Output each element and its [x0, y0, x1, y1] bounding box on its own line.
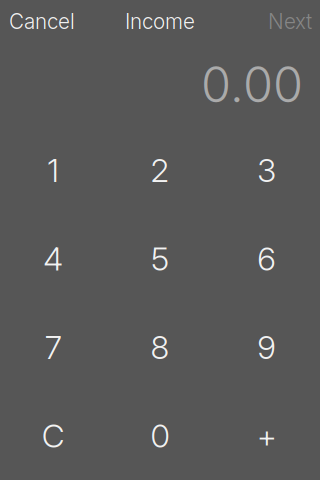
button[interactable]: 3 [213, 126, 320, 214]
staticText: + [257, 416, 277, 455]
button[interactable]: Next [259, 0, 320, 42]
button[interactable]: 5 [107, 214, 213, 303]
staticText: 9 [257, 328, 276, 367]
staticText: 8 [150, 328, 169, 367]
staticText: Income [125, 9, 195, 34]
button[interactable]: 2 [107, 126, 213, 214]
staticText: 2 [150, 151, 169, 190]
button[interactable]: 1 [0, 126, 107, 214]
button[interactable]: 6 [213, 214, 320, 303]
staticText: 4 [43, 239, 63, 278]
staticText: Cancel [9, 9, 75, 34]
staticText: 0.00 [201, 55, 303, 114]
staticText: C [42, 416, 65, 455]
staticText: 7 [45, 328, 62, 367]
button[interactable]: Add [213, 391, 320, 480]
staticText: 5 [151, 239, 169, 278]
staticText: 3 [257, 151, 276, 190]
staticText: 6 [257, 239, 276, 278]
button[interactable]: 4 [0, 214, 107, 303]
button[interactable]: 7 [0, 303, 107, 391]
button[interactable]: Clear [0, 391, 107, 480]
staticText: Next [268, 9, 312, 34]
button[interactable]: 9 [213, 303, 320, 391]
button[interactable]: 0 [107, 391, 213, 480]
staticText: 0 [150, 416, 169, 455]
button[interactable]: 8 [107, 303, 213, 391]
button[interactable]: Cancel [0, 0, 84, 42]
staticText: 1 [47, 151, 59, 190]
